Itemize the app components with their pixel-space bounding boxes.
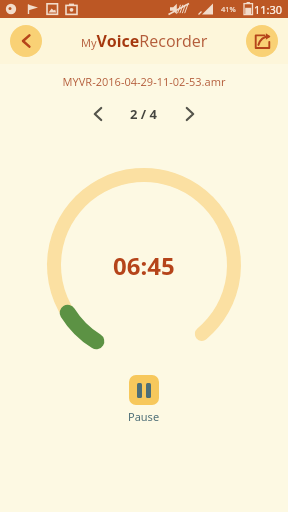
staticText: Pause — [128, 409, 160, 424]
staticText: 06:45 — [113, 249, 175, 282]
staticText: 11:30 — [254, 2, 283, 17]
button[interactable]: Next — [175, 99, 205, 129]
button[interactable]: Back — [10, 25, 42, 57]
button[interactable]: Pause — [129, 375, 159, 405]
staticText: 41% — [221, 4, 236, 14]
staticText: MYVR-2016-04-29-11-02-53.amr — [0, 74, 288, 89]
staticText: MyVoiceRecorder — [81, 30, 208, 52]
staticText: 2 / 4 — [130, 105, 158, 123]
button[interactable]: Previous — [83, 99, 113, 129]
button[interactable]: Share — [246, 25, 278, 57]
